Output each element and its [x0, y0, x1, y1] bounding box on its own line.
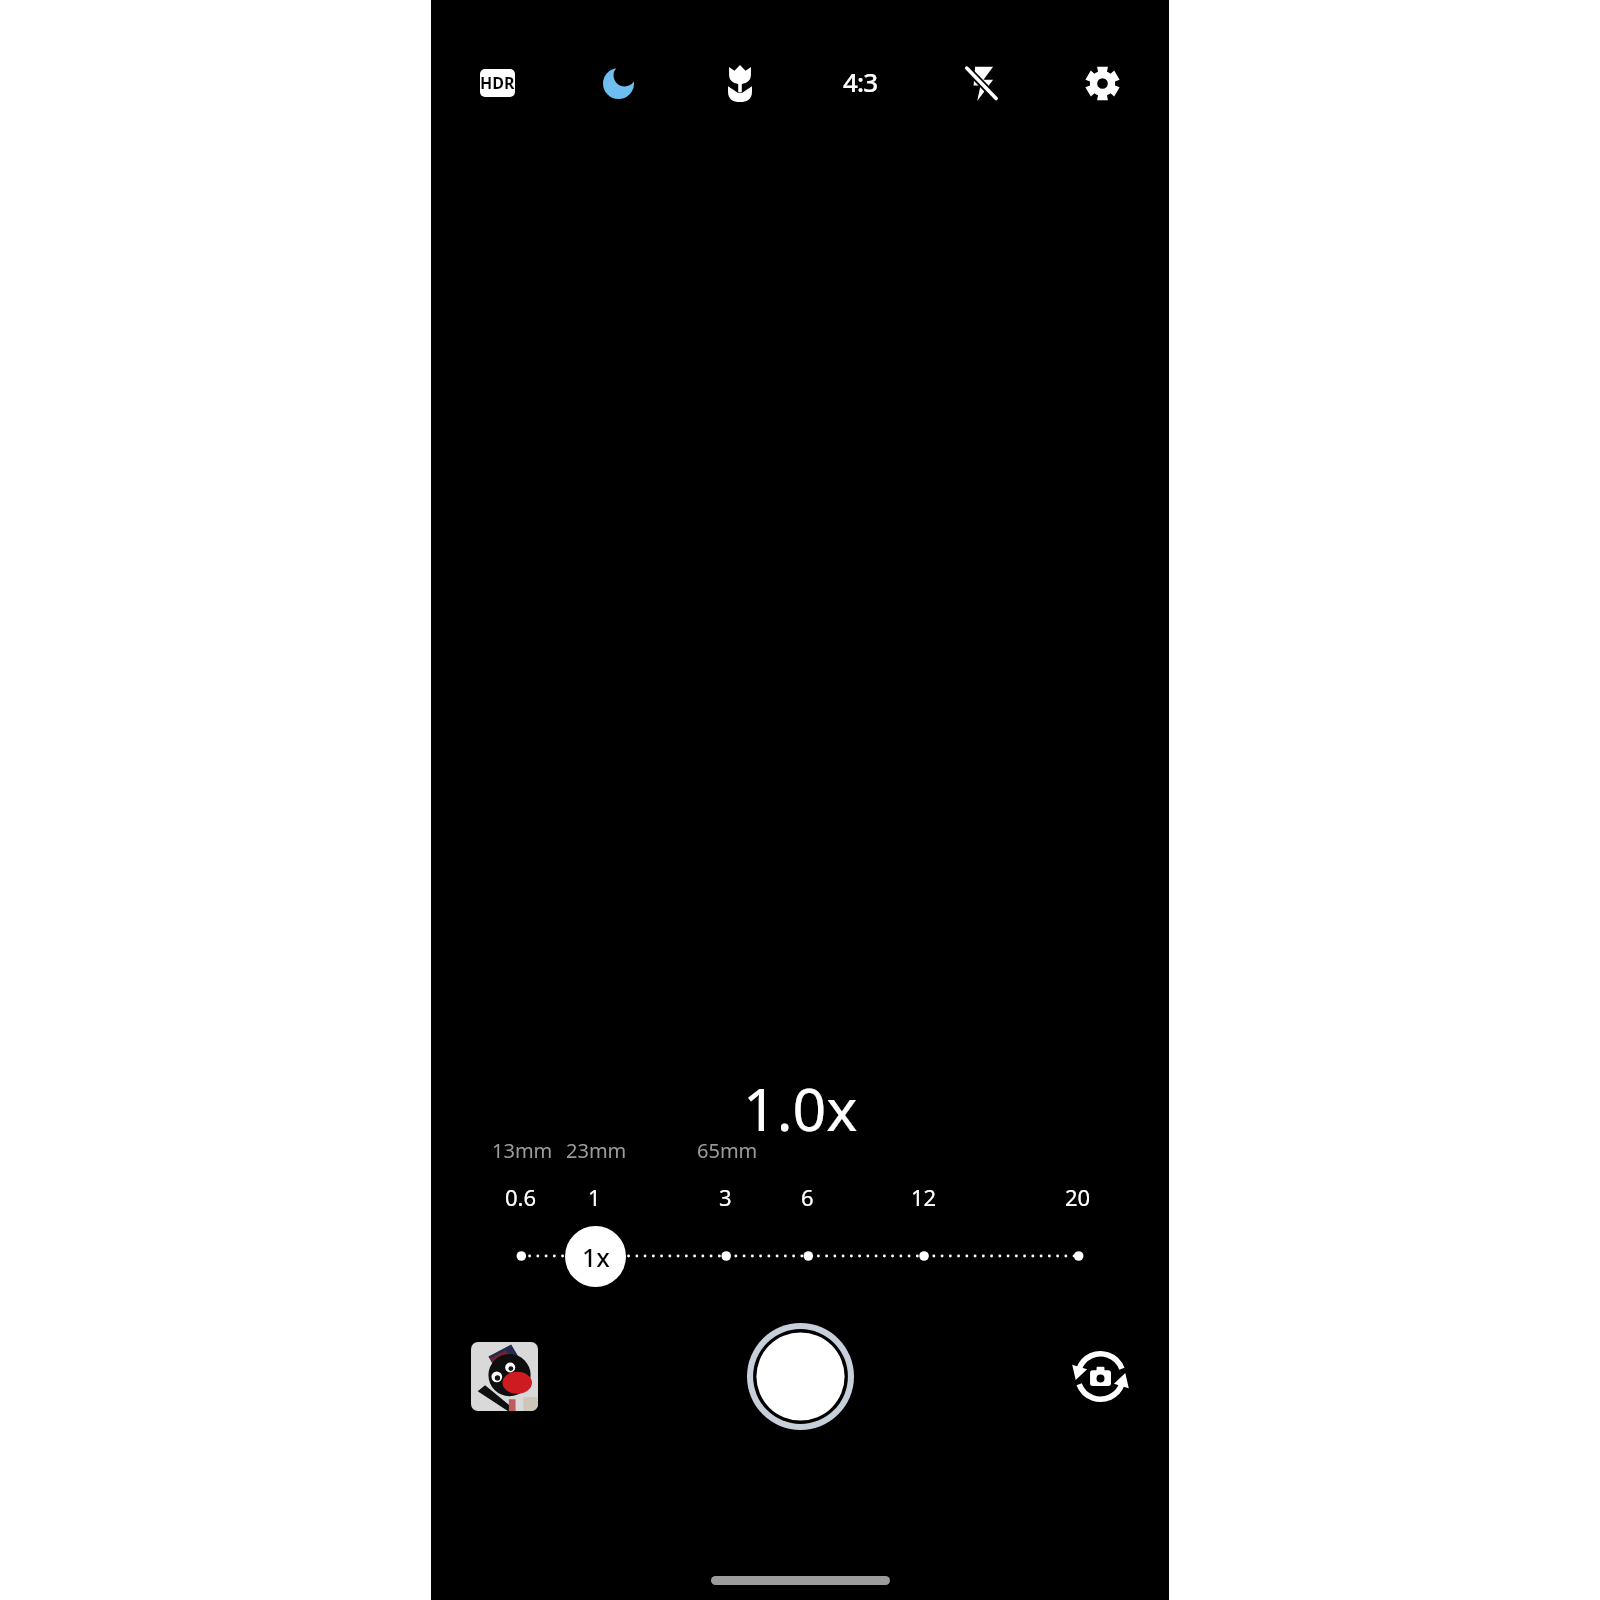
- button[interactable]: Switch camera: [1064, 1340, 1136, 1412]
- staticText: 20: [1065, 1182, 1091, 1212]
- button[interactable]: Zoom slider: [431, 1216, 1169, 1296]
- staticText: 1: [588, 1182, 601, 1212]
- staticText: 1.0x: [743, 1068, 858, 1148]
- staticText: 65mm: [697, 1137, 758, 1164]
- button[interactable]: Shutter: [747, 1323, 854, 1430]
- button[interactable]: Night mode: [558, 0, 679, 166]
- staticText: 3: [719, 1182, 732, 1212]
- staticText: 0.6: [505, 1182, 537, 1212]
- staticText: 12: [911, 1182, 937, 1212]
- button[interactable]: Aspect ratio 4:3: [800, 0, 921, 166]
- button[interactable]: Gallery: [471, 1342, 538, 1411]
- staticText: 4:3: [843, 64, 878, 99]
- staticText: HDR: [480, 72, 515, 94]
- staticText: 23mm: [566, 1137, 627, 1164]
- staticText: 1x: [582, 1240, 610, 1274]
- button[interactable]: Settings: [1042, 0, 1163, 166]
- staticText: 13mm: [492, 1137, 553, 1164]
- button[interactable]: Macro: [679, 0, 800, 166]
- button[interactable]: HDR: [437, 0, 558, 166]
- button[interactable]: Flash off: [921, 0, 1042, 166]
- staticText: 6: [801, 1182, 814, 1212]
